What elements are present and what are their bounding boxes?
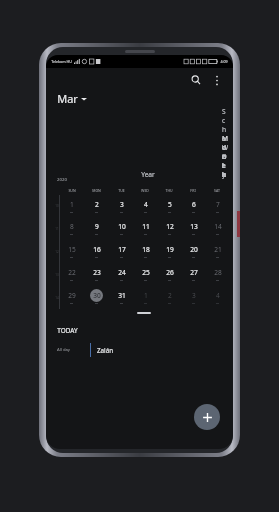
staticText: 25 [142,268,150,277]
staticText: FRI [190,188,196,193]
button[interactable]: 10 [109,217,133,240]
staticText: 30 [93,291,101,300]
staticText: 1 [70,200,74,209]
staticText: 2 [168,291,172,300]
staticText: 19 [166,245,174,254]
button[interactable]: 9 [84,217,109,240]
staticText: 15 [68,245,76,254]
staticText: 12 [166,222,174,231]
button[interactable]: 19 [157,240,181,263]
staticText: 26 [166,268,174,277]
button[interactable]: Search [186,70,206,90]
staticText: SUN [68,188,76,193]
staticText: 10 [118,222,126,231]
button[interactable]: 26 [157,263,181,286]
button[interactable]: 6 [181,195,205,217]
button[interactable]: 23 [84,263,109,286]
staticText: 8 [70,222,74,231]
button[interactable]: 11 [133,217,157,240]
button[interactable]: 15 [59,240,84,263]
button[interactable]: 29 [59,286,84,309]
button[interactable]: Mar [57,91,87,106]
button[interactable]: 28 [205,263,229,286]
button[interactable]: 5 [157,195,181,217]
staticText: 9 [95,222,99,231]
button[interactable]: 2 [157,286,181,309]
button[interactable]: 3 [109,195,133,217]
staticText: SAT [214,188,220,193]
button[interactable]: 4 [133,195,157,217]
staticText: 6 [192,200,196,209]
button[interactable]: 22 [59,263,84,286]
staticText: 24 [118,268,126,277]
button[interactable]: 16 [84,240,109,263]
staticText: 13 [190,222,198,231]
button[interactable]: 8 [59,217,84,240]
button[interactable]: Year [73,170,222,182]
button[interactable]: 3 [181,286,205,309]
staticText: MON [92,188,101,193]
staticText: 14 [214,222,222,231]
staticText: WED [141,188,149,193]
staticText: Telekom HU [51,59,72,64]
staticText: 28 [214,268,222,277]
staticText: 3 [120,200,124,209]
staticText: 12 [55,250,59,254]
button[interactable]: 25 [133,263,157,286]
staticText: TUE [118,188,125,193]
button[interactable]: 12 [157,217,181,240]
staticText: 5 [168,200,172,209]
button[interactable]: More options [208,71,226,89]
staticText: All day [57,347,70,353]
staticText: Mar [57,91,78,106]
staticText: 3 [192,291,196,300]
staticText: 18 [142,245,150,254]
staticText: 21 [214,245,222,254]
button[interactable]: 17 [109,240,133,263]
button[interactable]: 1 [133,286,157,309]
staticText: 31 [118,291,126,300]
button[interactable]: 20 [181,240,205,263]
staticText: 29 [68,291,76,300]
staticText: Year [141,170,155,179]
staticText: 27 [190,268,198,277]
button[interactable]: 13 [181,217,205,240]
staticText: 1 [144,291,148,300]
staticText: 11 [55,227,59,231]
staticText: 2 [95,200,99,209]
button[interactable]: Create event [194,404,220,430]
staticText: 4 [144,200,148,209]
button[interactable]: 4 [205,286,229,309]
staticText: 23 [93,268,101,277]
staticText: 22 [68,268,76,277]
staticText: 4 [216,291,220,300]
button[interactable]: 18 [133,240,157,263]
button[interactable]: 30 [84,286,109,309]
staticText: 13 [55,273,59,277]
staticText: 4:09 [220,59,228,64]
button[interactable]: All day [57,343,233,357]
staticText: 2020 [57,176,67,182]
staticText: 7 [216,200,220,209]
staticText: 11 [142,222,150,231]
button[interactable]: Expand [137,312,151,314]
staticText: 16 [93,245,101,254]
button[interactable]: 24 [109,263,133,286]
button[interactable]: 31 [109,286,133,309]
staticText: 14 [55,296,59,300]
button[interactable]: 14 [205,217,229,240]
button[interactable]: 2 [84,195,109,217]
staticText: 17 [118,245,126,254]
staticText: THU [165,188,173,193]
staticText: 10 [55,204,59,208]
staticText: Zalán [97,346,113,354]
staticText: 20 [190,245,198,254]
button[interactable]: 21 [205,240,229,263]
button[interactable]: 7 [205,195,229,217]
button[interactable]: 27 [181,263,205,286]
button[interactable]: 1 [59,195,84,217]
staticText: TODAY [57,326,78,335]
